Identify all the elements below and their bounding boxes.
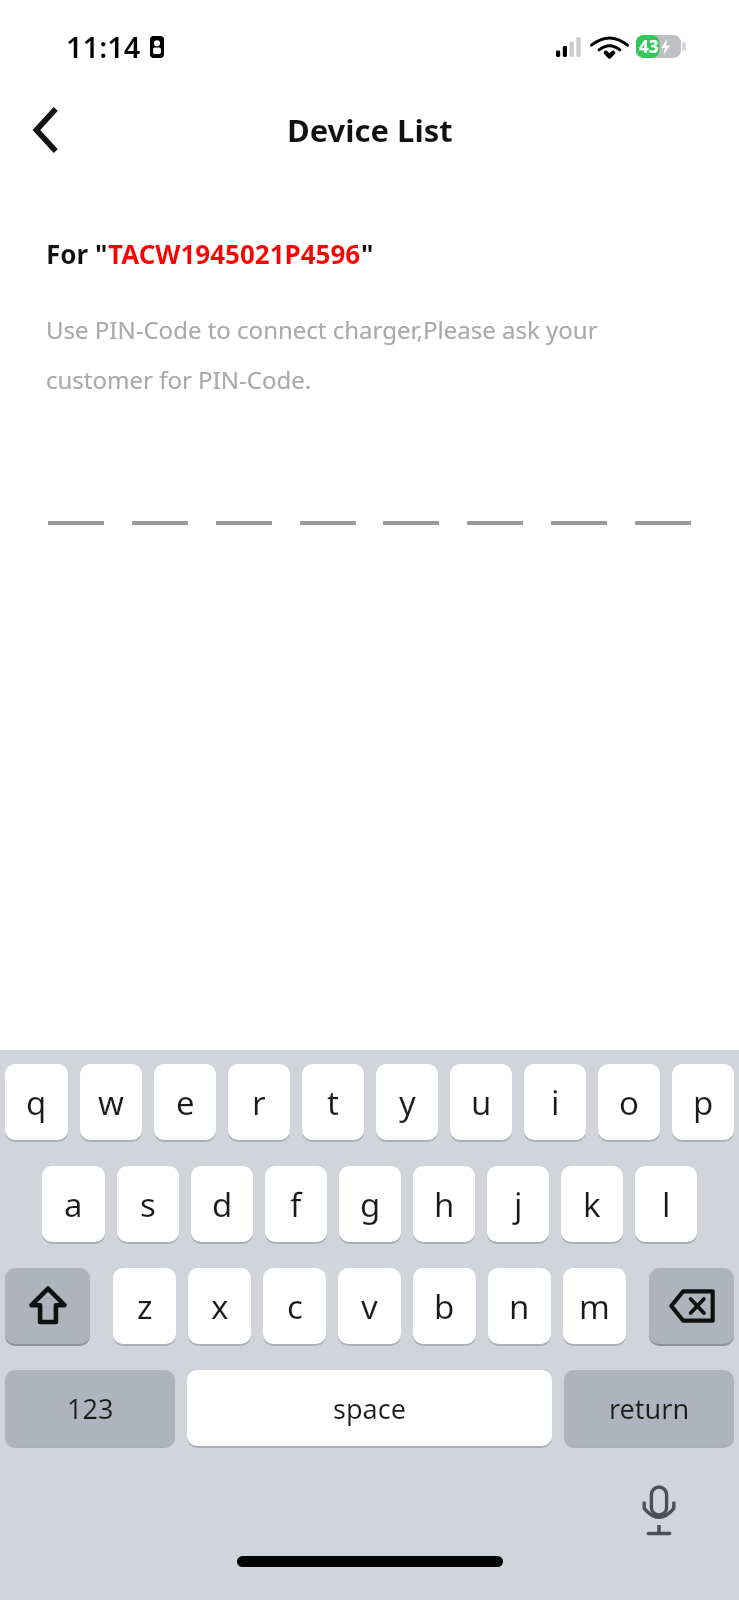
staticText: v	[361, 1284, 378, 1329]
button[interactable]: r	[228, 1064, 290, 1140]
staticText: b	[434, 1284, 455, 1329]
button[interactable]: d	[191, 1166, 253, 1242]
staticText: return	[609, 1390, 690, 1427]
staticText: i	[551, 1080, 560, 1125]
staticText: e	[176, 1080, 195, 1125]
staticText: For "	[46, 236, 108, 271]
staticText: y	[399, 1080, 416, 1125]
button[interactable]: g	[339, 1166, 401, 1242]
button[interactable]: 123	[5, 1370, 175, 1446]
button[interactable]: PIN digit 8	[633, 493, 693, 525]
button[interactable]: j	[487, 1166, 549, 1242]
button[interactable]: h	[413, 1166, 475, 1242]
button[interactable]: space	[187, 1370, 552, 1446]
staticText: customer for PIN-Code.	[46, 363, 312, 396]
staticText: u	[471, 1080, 492, 1125]
button[interactable]: n	[488, 1268, 551, 1344]
staticText: 123	[67, 1390, 114, 1427]
staticText: l	[662, 1182, 671, 1227]
staticText: g	[360, 1182, 381, 1227]
button[interactable]: x	[188, 1268, 251, 1344]
staticText: t	[327, 1080, 339, 1125]
button[interactable]: k	[561, 1166, 623, 1242]
button[interactable]: u	[450, 1064, 512, 1140]
staticText: "	[361, 236, 374, 271]
button[interactable]: z	[113, 1268, 176, 1344]
button[interactable]: Shift	[5, 1268, 90, 1344]
staticText: h	[434, 1182, 455, 1227]
button[interactable]: f	[265, 1166, 327, 1242]
staticText: d	[212, 1182, 233, 1227]
staticText: q	[26, 1080, 47, 1125]
button[interactable]: s	[117, 1166, 179, 1242]
staticText: o	[619, 1080, 639, 1125]
staticText: x	[211, 1284, 229, 1329]
staticText: 11:14	[66, 27, 141, 66]
button[interactable]: c	[263, 1268, 326, 1344]
staticText: m	[579, 1284, 610, 1329]
button[interactable]: PIN digit 4	[298, 493, 358, 525]
button[interactable]: b	[413, 1268, 476, 1344]
button[interactable]: Back	[14, 98, 78, 162]
staticText: w	[98, 1080, 124, 1125]
button[interactable]: v	[338, 1268, 401, 1344]
staticText: TACW1945021P4596	[108, 236, 361, 271]
staticText: f	[290, 1182, 302, 1227]
button[interactable]: PIN digit 6	[465, 493, 525, 525]
button[interactable]: Backspace	[649, 1268, 734, 1344]
button[interactable]: PIN digit 3	[214, 493, 274, 525]
button[interactable]: w	[80, 1064, 142, 1140]
staticText: r	[252, 1080, 266, 1125]
button[interactable]: PIN digit 1	[46, 493, 106, 525]
staticText: c	[287, 1284, 303, 1329]
staticText: n	[509, 1284, 530, 1329]
button[interactable]: t	[302, 1064, 364, 1140]
button[interactable]: o	[598, 1064, 660, 1140]
staticText: a	[64, 1182, 83, 1227]
staticText: Device List	[287, 109, 453, 151]
button[interactable]: PIN digit 5	[381, 493, 441, 525]
button[interactable]: PIN digit 2	[130, 493, 190, 525]
button[interactable]: e	[154, 1064, 216, 1140]
button[interactable]: p	[672, 1064, 734, 1140]
staticText: j	[514, 1182, 523, 1227]
button[interactable]: y	[376, 1064, 438, 1140]
button[interactable]: a	[42, 1166, 105, 1242]
staticText: space	[333, 1390, 406, 1427]
staticText: Use PIN-Code to connect charger,Please a…	[46, 313, 598, 346]
button[interactable]: Dictate	[631, 1483, 687, 1539]
staticText: p	[693, 1080, 714, 1125]
staticText: k	[583, 1182, 601, 1227]
button[interactable]: PIN digit 7	[549, 493, 609, 525]
button[interactable]: l	[635, 1166, 697, 1242]
staticText: s	[140, 1182, 156, 1227]
button[interactable]: i	[524, 1064, 586, 1140]
button[interactable]: m	[563, 1268, 626, 1344]
button[interactable]: q	[5, 1064, 68, 1140]
button[interactable]: return	[564, 1370, 734, 1446]
staticText: 43	[639, 35, 659, 58]
staticText: z	[137, 1284, 153, 1329]
